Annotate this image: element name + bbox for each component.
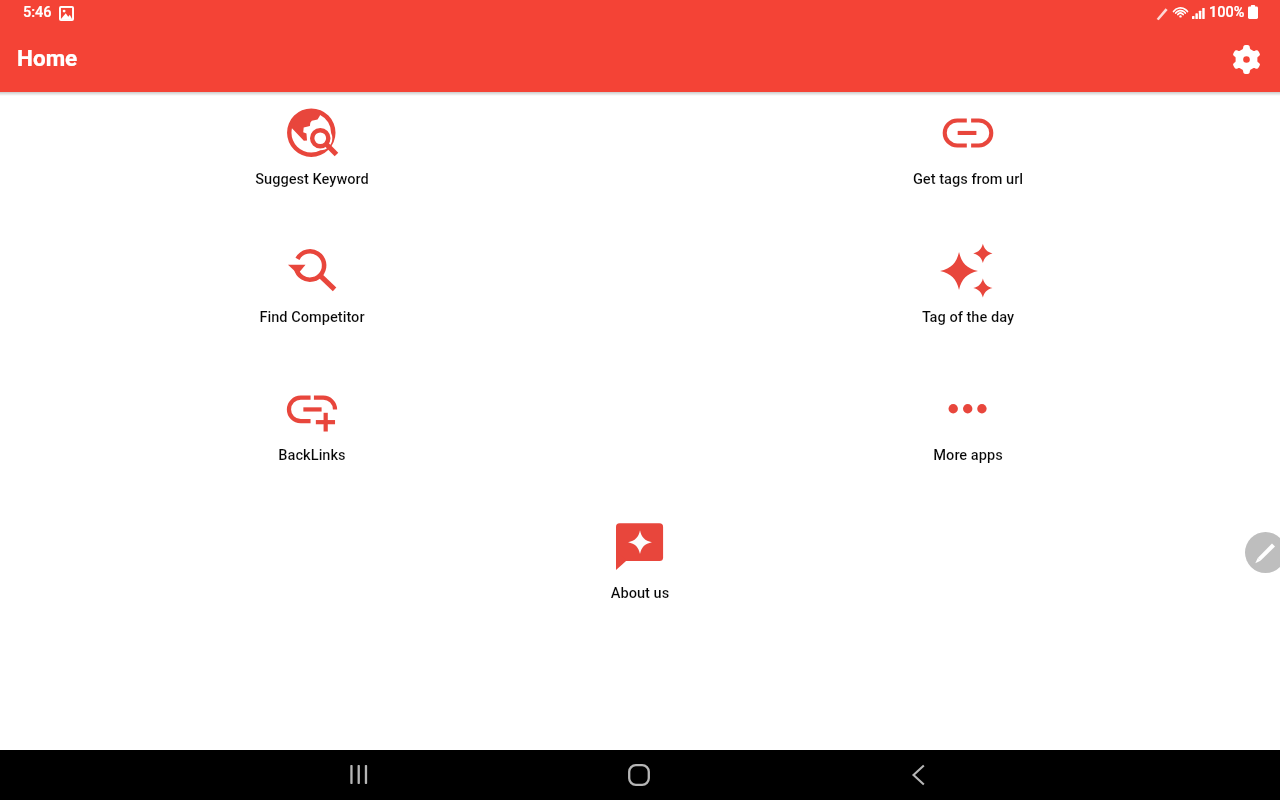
button[interactable]: More apps (868, 378, 1068, 469)
button[interactable]: Edit (1245, 532, 1280, 573)
button[interactable]: Find Competitor (212, 240, 412, 331)
staticText: Find Competitor (212, 308, 412, 325)
staticText: About us (540, 584, 740, 601)
button[interactable]: BackLinks (212, 378, 412, 469)
button[interactable]: About us (540, 516, 740, 607)
button[interactable]: Tag of the day (868, 240, 1068, 331)
button[interactable]: Home (615, 751, 663, 799)
button[interactable]: Recents (334, 751, 382, 799)
staticText: 5:46 (23, 4, 52, 21)
staticText: Suggest Keyword (212, 170, 412, 187)
staticText: More apps (868, 446, 1068, 463)
button[interactable]: Settings (1226, 39, 1266, 79)
staticText: Tag of the day (868, 308, 1068, 325)
button[interactable]: Home (17, 45, 78, 71)
staticText: Home (17, 45, 78, 71)
button[interactable]: Suggest Keyword (212, 102, 412, 193)
staticText: Get tags from url (868, 170, 1068, 187)
staticText: 100% (1209, 4, 1245, 21)
staticText: BackLinks (212, 446, 412, 463)
button[interactable]: Back (895, 751, 943, 799)
button[interactable]: Get tags from url (868, 102, 1068, 193)
